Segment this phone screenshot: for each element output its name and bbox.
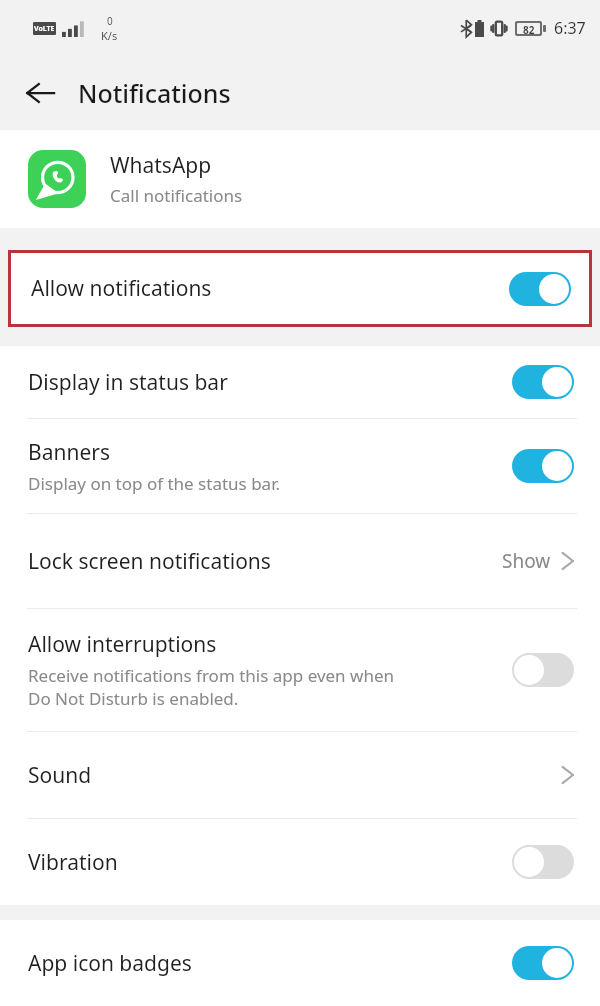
button[interactable]: WhatsApp xyxy=(0,130,600,228)
staticText: 82 xyxy=(523,23,535,34)
staticText: 6:37 xyxy=(554,17,586,39)
staticText: Call notifications xyxy=(110,184,243,207)
staticText: Receive notifications from this app even… xyxy=(28,664,395,710)
button[interactable]: Display in status bar xyxy=(0,346,600,418)
button[interactable]: Vibration xyxy=(0,819,600,905)
staticText: VoLTE xyxy=(34,24,55,34)
staticText: Lock screen notifications xyxy=(28,547,271,576)
button[interactable]: Banners xyxy=(0,419,600,513)
staticText: Display on top of the status bar. xyxy=(28,472,280,495)
staticText: Show xyxy=(502,548,551,574)
staticText: WhatsApp xyxy=(110,151,212,180)
staticText: App icon badges xyxy=(28,949,192,978)
button[interactable]: Allow interruptions xyxy=(0,609,600,731)
staticText: Vibration xyxy=(28,848,118,877)
button[interactable]: On xyxy=(512,449,574,483)
button[interactable]: On xyxy=(509,272,571,306)
staticText: Sound xyxy=(28,761,92,790)
button[interactable]: Off xyxy=(512,653,574,687)
button[interactable]: Sound xyxy=(0,732,600,818)
staticText: Banners xyxy=(28,438,110,467)
staticText: Notifications xyxy=(78,76,231,110)
button[interactable]: On xyxy=(512,365,574,399)
staticText: Allow notifications xyxy=(31,274,212,303)
button[interactable]: Back xyxy=(14,67,66,119)
staticText: Allow interruptions xyxy=(28,630,217,659)
staticText: 0 xyxy=(107,14,113,28)
button[interactable]: Off xyxy=(512,845,574,879)
button[interactable]: App icon badges xyxy=(0,920,600,1006)
button[interactable]: Allow notifications xyxy=(11,253,589,324)
staticText: Display in status bar xyxy=(28,368,228,397)
staticText: K/s xyxy=(101,28,118,43)
button[interactable]: On xyxy=(512,946,574,980)
button[interactable]: Lock screen notifications xyxy=(0,514,600,608)
